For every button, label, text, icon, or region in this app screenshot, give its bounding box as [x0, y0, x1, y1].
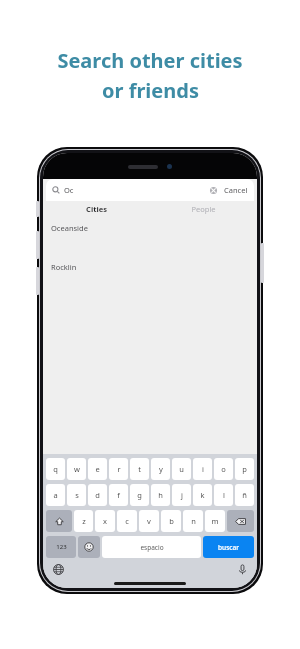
staticText: x: [103, 516, 107, 526]
button[interactable]: n: [183, 510, 203, 532]
staticText: m: [211, 516, 219, 526]
button[interactable]: i: [193, 458, 212, 480]
staticText: ñ: [242, 490, 247, 500]
staticText: g: [137, 490, 142, 500]
button[interactable]: h: [151, 484, 170, 506]
staticText: d: [95, 490, 100, 500]
button[interactable]: u: [172, 458, 191, 480]
button[interactable]: o: [214, 458, 233, 480]
staticText: buscar: [218, 543, 239, 552]
staticText: i: [202, 464, 204, 474]
staticText: c: [125, 516, 129, 526]
staticText: v: [147, 516, 151, 526]
button[interactable]: m: [205, 510, 225, 532]
button[interactable]: t: [130, 458, 149, 480]
button[interactable]: Cities: [43, 201, 150, 217]
staticText: j: [181, 490, 183, 500]
button[interactable]: w: [67, 458, 86, 480]
staticText: y: [159, 464, 163, 474]
button[interactable]: s: [67, 484, 86, 506]
button[interactable]: Oceanside: [43, 217, 257, 239]
staticText: e: [95, 464, 100, 474]
staticText: f: [117, 490, 120, 500]
button[interactable]: d: [88, 484, 107, 506]
staticText: Cities: [86, 204, 107, 214]
button[interactable]: c: [117, 510, 137, 532]
button[interactable]: Cancel: [224, 185, 248, 195]
staticText: People: [191, 204, 216, 214]
staticText: q: [53, 464, 58, 474]
button[interactable]: f: [109, 484, 128, 506]
button[interactable]: v: [139, 510, 159, 532]
staticText: z: [82, 516, 86, 526]
staticText: Cancel: [224, 185, 248, 195]
button[interactable]: y: [151, 458, 170, 480]
button[interactable]: q: [46, 458, 65, 480]
button[interactable]: Dictation: [235, 562, 249, 576]
staticText: b: [169, 516, 174, 526]
staticText: n: [191, 516, 196, 526]
button[interactable]: x: [95, 510, 115, 532]
button[interactable]: r: [109, 458, 128, 480]
button[interactable]: Rocklin: [43, 257, 257, 277]
staticText: s: [75, 490, 79, 500]
button[interactable]: p: [235, 458, 254, 480]
button[interactable]: j: [172, 484, 191, 506]
button[interactable]: l: [214, 484, 233, 506]
staticText: a: [53, 490, 58, 500]
button[interactable]: buscar: [203, 536, 254, 558]
staticText: k: [200, 490, 205, 500]
staticText: or friends: [102, 77, 199, 104]
button[interactable]: g: [130, 484, 149, 506]
staticText: Search other cities: [57, 47, 243, 74]
staticText: Oc: [64, 185, 74, 195]
staticText: Oceanside: [51, 223, 88, 233]
button[interactable]: 123: [46, 536, 76, 558]
button[interactable]: a: [46, 484, 65, 506]
staticText: Rocklin: [51, 262, 77, 272]
button[interactable]: b: [161, 510, 181, 532]
staticText: h: [158, 490, 163, 500]
staticText: p: [242, 464, 247, 474]
staticText: w: [74, 464, 80, 474]
staticText: 123: [56, 543, 67, 551]
button[interactable]: espacio: [102, 536, 201, 558]
staticText: r: [117, 464, 121, 474]
button[interactable]: k: [193, 484, 212, 506]
button[interactable]: ñ: [235, 484, 254, 506]
staticText: u: [179, 464, 184, 474]
button[interactable]: e: [88, 458, 107, 480]
button[interactable]: Backspace: [227, 510, 254, 532]
button[interactable]: z: [74, 510, 93, 532]
button[interactable]: Clear search: [207, 184, 219, 196]
staticText: o: [221, 464, 226, 474]
button[interactable]: Shift: [46, 510, 72, 532]
button[interactable]: Emoji: [78, 536, 100, 558]
staticText: t: [138, 464, 141, 474]
staticText: espacio: [140, 543, 164, 552]
button[interactable]: Change keyboard language: [51, 562, 65, 576]
button[interactable]: People: [150, 201, 257, 217]
staticText: l: [223, 490, 225, 500]
